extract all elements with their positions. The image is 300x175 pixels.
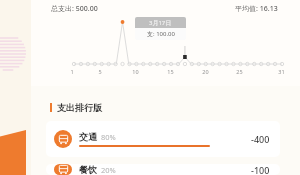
staticText: 1 xyxy=(70,68,74,75)
staticText: 交通 xyxy=(79,131,97,142)
staticText: 总支出: 500.00 xyxy=(51,4,98,14)
staticText: 20% xyxy=(101,165,116,175)
staticText: 餐饮 xyxy=(79,164,97,175)
staticText: 支出排行版 xyxy=(57,102,102,113)
button[interactable] xyxy=(31,0,300,86)
button[interactable]: 餐饮 xyxy=(46,164,280,175)
other: 交通 xyxy=(54,130,72,148)
other: 餐饮 xyxy=(54,164,72,175)
staticText: 20 xyxy=(202,68,209,75)
staticText: 平均值: 16.13 xyxy=(235,4,278,14)
staticText: 15 xyxy=(167,68,174,75)
staticText: -100 xyxy=(251,164,270,175)
staticText: 10 xyxy=(132,68,139,75)
staticText: 25 xyxy=(236,68,243,75)
staticText: 3月17日 xyxy=(149,19,172,27)
staticText: 支: 100.00 xyxy=(147,30,175,38)
staticText: -400 xyxy=(251,133,270,145)
staticText: 5 xyxy=(98,68,102,75)
button[interactable]: 交通 xyxy=(46,121,280,157)
staticText: 31 xyxy=(278,68,285,75)
staticText: 80% xyxy=(101,132,116,142)
